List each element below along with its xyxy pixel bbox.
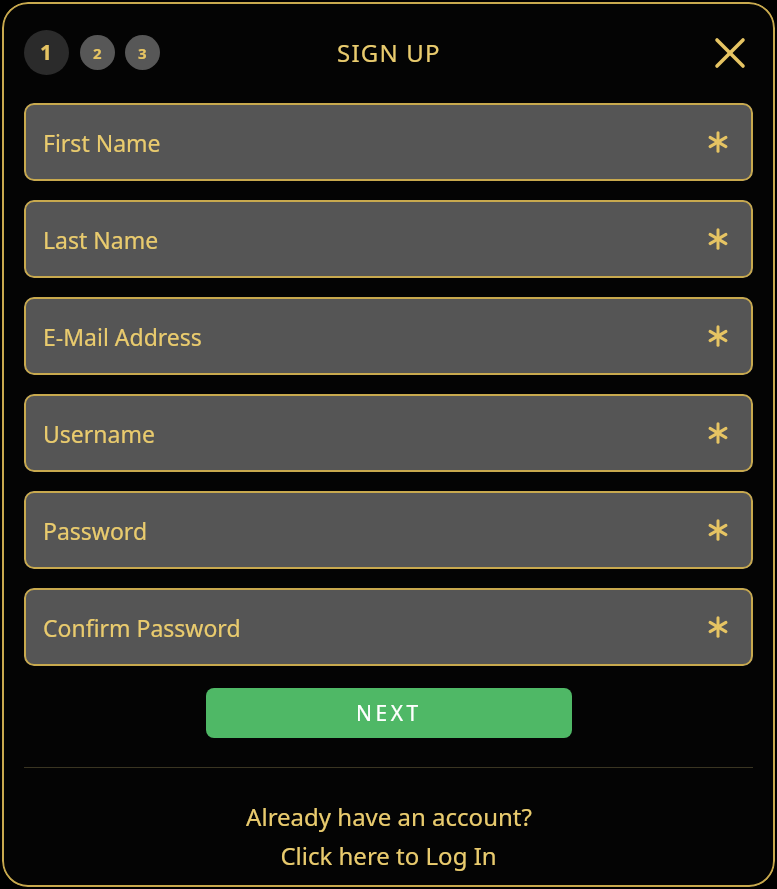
button[interactable]: 2 <box>80 35 115 70</box>
button[interactable]: 3 <box>125 35 160 70</box>
staticText: Last Name <box>43 224 159 255</box>
staticText: SIGN UP <box>337 36 441 69</box>
button[interactable]: Close <box>707 30 753 76</box>
staticText: NEXT <box>356 699 422 728</box>
staticText: Username <box>43 418 155 449</box>
staticText: Confirm Password <box>43 612 241 643</box>
staticText: First Name <box>43 127 161 158</box>
button[interactable]: Already have an account? <box>2 800 775 872</box>
staticText: E-Mail Address <box>43 321 202 352</box>
button[interactable]: Password <box>24 491 753 569</box>
button[interactable]: Confirm Password <box>24 588 753 666</box>
staticText: 1 <box>40 38 53 67</box>
staticText: Password <box>43 515 148 546</box>
staticText: 2 <box>93 43 102 63</box>
button[interactable]: 1 <box>24 30 69 75</box>
staticText: Already have an account? <box>246 800 532 833</box>
button[interactable]: Last Name <box>24 200 753 278</box>
button[interactable]: First Name <box>24 103 753 181</box>
staticText: 3 <box>138 43 147 63</box>
staticText: Click here to Log In <box>280 839 497 872</box>
button[interactable]: E-Mail Address <box>24 297 753 375</box>
button[interactable]: Username <box>24 394 753 472</box>
button[interactable]: NEXT <box>206 688 572 738</box>
